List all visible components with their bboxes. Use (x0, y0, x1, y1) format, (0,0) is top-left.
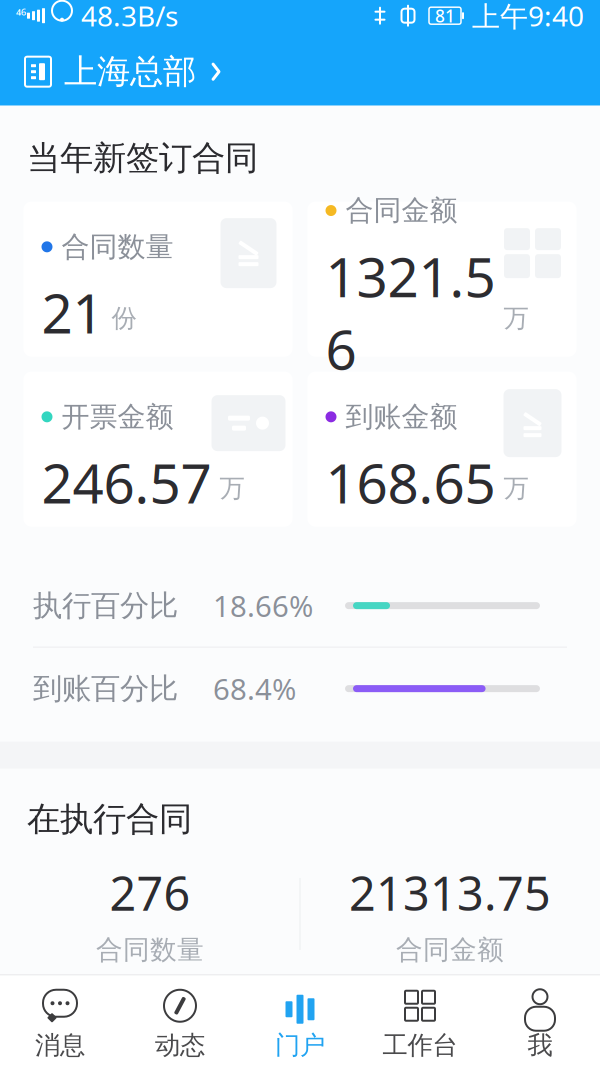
staticText: 工作台 (382, 1030, 457, 1061)
staticText: 68.4% (213, 669, 296, 708)
staticText: ⁴⁶ (16, 6, 26, 25)
staticText: 到账百分比 (33, 671, 178, 707)
staticText: 21 (41, 276, 103, 349)
button[interactable]: 动态 (120, 976, 240, 1067)
staticText: 执行百分比 (33, 588, 178, 624)
button[interactable]: 门户 (240, 976, 360, 1067)
staticText: 18.66% (213, 586, 313, 625)
staticText: 动态 (155, 1030, 205, 1061)
button[interactable]: 消息 (0, 976, 120, 1067)
staticText: 万 (219, 473, 244, 504)
staticText: 合同数量 (96, 934, 204, 966)
staticText: 168.65 (325, 446, 495, 519)
staticText: 246.57 (41, 446, 211, 519)
button[interactable]: 合同数量 (23, 202, 292, 357)
button[interactable]: 上海总部 (0, 38, 600, 106)
staticText: 上海总部 (64, 51, 196, 92)
staticText: 1321.56 (325, 240, 495, 385)
staticText: 我 (527, 1030, 552, 1061)
staticText: 到账金额 (345, 400, 457, 434)
staticText: 合同数量 (61, 230, 173, 264)
staticText: 在执行合同 (27, 799, 192, 839)
staticText: 合同金额 (396, 934, 504, 966)
staticText: 81 (435, 4, 455, 27)
button[interactable]: 工作台 (360, 976, 480, 1067)
staticText: 21313.75 (349, 862, 551, 924)
staticText: 当年新签订合同 (27, 138, 258, 179)
staticText: 万 (503, 473, 528, 504)
staticText: 消息 (35, 1030, 85, 1061)
staticText: 万 (503, 303, 528, 334)
staticText: 合同金额 (345, 193, 457, 228)
staticText: 48.3B/s (81, 0, 178, 34)
staticText: 门户 (275, 1030, 325, 1061)
button[interactable]: 开票金额 (23, 372, 292, 527)
staticText: 上午9:40 (472, 0, 584, 34)
staticText: 份 (111, 303, 136, 334)
button[interactable]: 到账金额 (307, 372, 576, 527)
staticText: 开票金额 (61, 400, 173, 434)
button[interactable]: 合同金额 (307, 202, 576, 357)
staticText: 276 (109, 862, 190, 924)
button[interactable]: 我 (480, 976, 600, 1067)
